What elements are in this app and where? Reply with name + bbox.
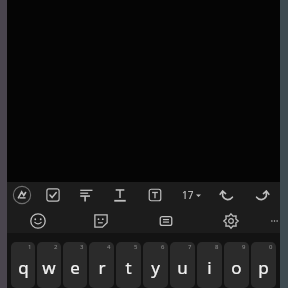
button[interactable]: 3 [63,242,87,288]
button[interactable]: Emoji [24,208,52,233]
staticText: 5 [134,243,138,251]
button[interactable]: GIF [152,208,180,233]
button[interactable]: 8 [197,242,222,288]
button[interactable]: 4 [89,242,114,288]
button[interactable]: Insert box [137,182,173,208]
button[interactable]: Redo [245,182,279,208]
button[interactable]: Undo [209,182,245,208]
staticText: o [231,256,242,279]
staticText: w [42,256,56,279]
button[interactable]: Settings [217,208,245,233]
staticText: 2 [54,243,58,251]
button[interactable]: Paragraph format [69,182,103,208]
button[interactable]: More options [269,208,280,233]
button[interactable]: Checklist [37,182,69,208]
button[interactable]: Stickers [87,208,115,233]
staticText: 8 [215,243,219,251]
staticText: q [18,256,29,279]
button[interactable]: 2 [37,242,61,288]
staticText: 3 [80,243,84,251]
button[interactable]: 17 [173,182,209,208]
staticText: y [151,256,160,279]
staticText: 9 [242,243,246,251]
staticText: 7 [188,243,192,251]
staticText: t [125,256,132,279]
staticText: 4 [107,243,111,251]
button[interactable]: 5 [116,242,141,288]
staticText: r [98,256,106,279]
button[interactable]: 0 [251,242,276,288]
staticText: 0 [269,243,273,251]
button[interactable]: Text style [7,182,37,208]
staticText: 6 [161,243,165,251]
button[interactable]: 9 [224,242,249,288]
staticText: i [207,256,212,279]
button[interactable]: 6 [143,242,168,288]
button[interactable]: 7 [170,242,195,288]
staticText: e [70,256,80,279]
button[interactable]: 1 [11,242,35,288]
staticText: u [177,256,188,279]
staticText: 17 [182,188,194,202]
staticText: 1 [28,243,32,251]
staticText: p [258,256,269,279]
button[interactable]: Text format [103,182,137,208]
